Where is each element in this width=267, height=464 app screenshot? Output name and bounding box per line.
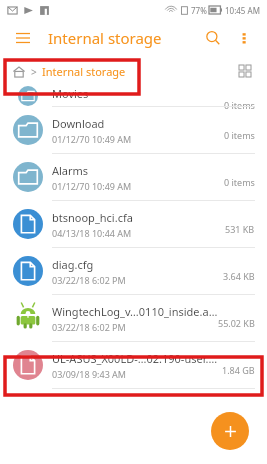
staticText: 10:45 AM [225, 5, 260, 16]
staticText: 03/22/18 6:02 PM [52, 274, 126, 286]
staticText: 3.64 KB [223, 270, 255, 282]
staticText: Internal storage [42, 64, 126, 79]
button[interactable]: WingtechLog_v…0110_inside.apk [0, 295, 267, 341]
staticText: 0 items [224, 99, 255, 111]
button[interactable]: Menu [12, 27, 34, 49]
staticText: Internal storage [48, 28, 162, 48]
staticText: btsnoop_hci.cfa [52, 210, 133, 225]
staticText: 77% [191, 5, 207, 16]
staticText: 01/12/70 10:49 AM [52, 133, 132, 145]
staticText: 1.84 GB [222, 364, 255, 376]
staticText: UL-ASUS_X00LD-…02.190-user.zip [52, 351, 222, 366]
staticText: > [31, 65, 37, 79]
button[interactable]: More options [233, 27, 255, 49]
staticText: 0 items [224, 129, 255, 141]
button[interactable]: Add [211, 412, 249, 450]
staticText: 03/09/18 9:43 AM [52, 368, 127, 380]
button[interactable]: btsnoop_hci.cfa [0, 201, 267, 247]
staticText: Download [52, 116, 105, 131]
staticText: 531 KB [225, 223, 255, 235]
staticText: Movies [52, 86, 89, 101]
button[interactable]: UL-ASUS_X00LD-…02.190-user.zip [0, 342, 267, 388]
button[interactable]: Alarms [0, 154, 267, 200]
staticText: 01/12/70 10:49 AM [52, 180, 132, 192]
staticText: WingtechLog_v…0110_inside.apk [52, 304, 218, 319]
button[interactable]: diag.cfg [0, 248, 267, 294]
button[interactable]: > [12, 64, 126, 79]
staticText: Alarms [52, 163, 89, 178]
button[interactable]: Movies [0, 86, 267, 106]
staticText: 03/22/18 6:02 PM [52, 321, 126, 333]
button[interactable]: Search [201, 26, 225, 50]
staticText: 55.02 KB [218, 317, 255, 329]
staticText: 0 items [224, 176, 255, 188]
staticText: 04/13/18 10:44 AM [52, 227, 132, 239]
staticText: diag.cfg [52, 257, 94, 272]
button[interactable]: Grid view [235, 61, 255, 81]
button[interactable]: Download [0, 107, 267, 153]
